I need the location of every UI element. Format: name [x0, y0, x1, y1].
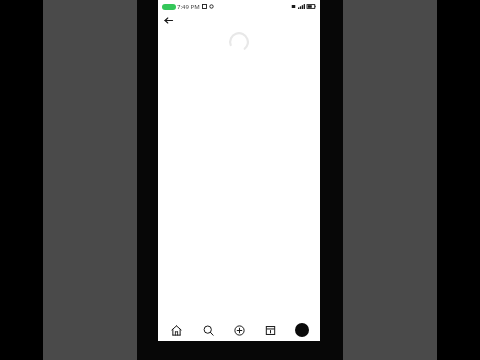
button[interactable]: Saved: [257, 319, 283, 341]
button[interactable]: Add: [226, 319, 252, 341]
button[interactable]: Home: [163, 319, 189, 341]
button[interactable]: Profile: [289, 319, 315, 341]
button[interactable]: Back: [162, 14, 175, 27]
staticText: 7:49 PM: [177, 3, 200, 11]
button[interactable]: Search: [195, 319, 221, 341]
